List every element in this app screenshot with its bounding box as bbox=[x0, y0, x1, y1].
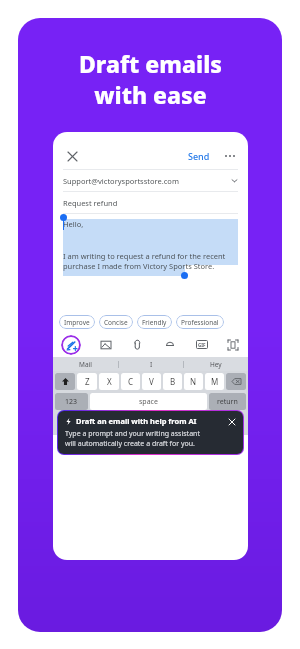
staticText: Friendly bbox=[142, 318, 167, 327]
staticText: Improve bbox=[64, 318, 90, 327]
staticText: I am writing to request a refund for the… bbox=[63, 251, 226, 261]
button[interactable]: Improve bbox=[59, 315, 95, 329]
button[interactable]: Request refund bbox=[53, 192, 248, 213]
button[interactable]: M bbox=[205, 373, 224, 390]
button[interactable]: Support@victorysportsstore.com bbox=[53, 170, 248, 191]
button[interactable]: Professional bbox=[176, 315, 224, 329]
staticText: Concise bbox=[104, 318, 128, 327]
button[interactable]: Friendly bbox=[137, 315, 172, 329]
staticText: Draft an email with help from AI bbox=[76, 416, 197, 426]
button[interactable]: Backspace bbox=[226, 373, 246, 390]
staticText: Type a prompt and your writing assistant bbox=[65, 429, 200, 439]
staticText: space bbox=[139, 397, 158, 407]
staticText: Request refund bbox=[63, 198, 118, 208]
button[interactable]: Shift bbox=[55, 373, 75, 390]
staticText: Professional bbox=[181, 318, 219, 327]
button[interactable]: Hello, bbox=[53, 214, 248, 312]
button[interactable]: I bbox=[119, 360, 183, 369]
button[interactable]: Space bbox=[90, 393, 207, 410]
button[interactable]: Mail bbox=[53, 360, 118, 369]
button[interactable]: Attach file bbox=[131, 338, 145, 352]
staticText: purchase I made from Victory Sports Stor… bbox=[63, 261, 215, 271]
staticText: Hey bbox=[210, 360, 222, 369]
staticText: Draft emails bbox=[79, 48, 222, 79]
staticText: Support@victorysportsstore.com bbox=[63, 176, 179, 186]
button[interactable]: C bbox=[121, 373, 140, 390]
staticText: C bbox=[128, 376, 134, 387]
staticText: GIF bbox=[198, 342, 206, 348]
button[interactable]: Dismiss bbox=[227, 417, 236, 426]
button[interactable]: Return bbox=[209, 393, 246, 410]
button[interactable]: Insert image bbox=[99, 338, 113, 352]
button[interactable]: Hey bbox=[184, 360, 248, 369]
staticText: will automatically create a draft for yo… bbox=[65, 439, 195, 449]
staticText: B bbox=[170, 376, 176, 387]
staticText: I bbox=[150, 360, 153, 369]
button[interactable]: N bbox=[184, 373, 203, 390]
staticText: with ease bbox=[94, 79, 207, 110]
staticText: Mail bbox=[79, 360, 92, 369]
button[interactable]: Scan document bbox=[226, 338, 240, 352]
staticText: Hello, bbox=[63, 219, 84, 229]
staticText: X bbox=[107, 376, 112, 387]
button[interactable]: More options bbox=[222, 148, 238, 164]
button[interactable]: Close bbox=[63, 147, 81, 165]
staticText: M bbox=[211, 376, 219, 387]
button[interactable]: Voice input bbox=[229, 417, 242, 430]
button[interactable]: Z bbox=[77, 373, 97, 390]
staticText: Z bbox=[85, 376, 90, 387]
staticText: return bbox=[217, 397, 238, 407]
staticText: 123 bbox=[65, 397, 78, 407]
button[interactable]: Send bbox=[185, 148, 213, 164]
staticText: N bbox=[190, 376, 197, 387]
button[interactable]: Drive bbox=[163, 338, 177, 352]
button[interactable]: Emoji bbox=[59, 417, 72, 430]
button[interactable]: Concise bbox=[99, 315, 133, 329]
button[interactable]: B bbox=[163, 373, 182, 390]
button[interactable]: Insert GIF bbox=[195, 338, 208, 351]
button[interactable]: Numbers bbox=[55, 393, 88, 410]
button[interactable]: X bbox=[99, 373, 119, 390]
button[interactable]: Draft an email with help from AI bbox=[58, 411, 243, 454]
button[interactable]: V bbox=[142, 373, 161, 390]
button[interactable]: AI writing assistant bbox=[61, 335, 81, 355]
staticText: Send bbox=[188, 150, 210, 162]
staticText: V bbox=[149, 376, 154, 387]
